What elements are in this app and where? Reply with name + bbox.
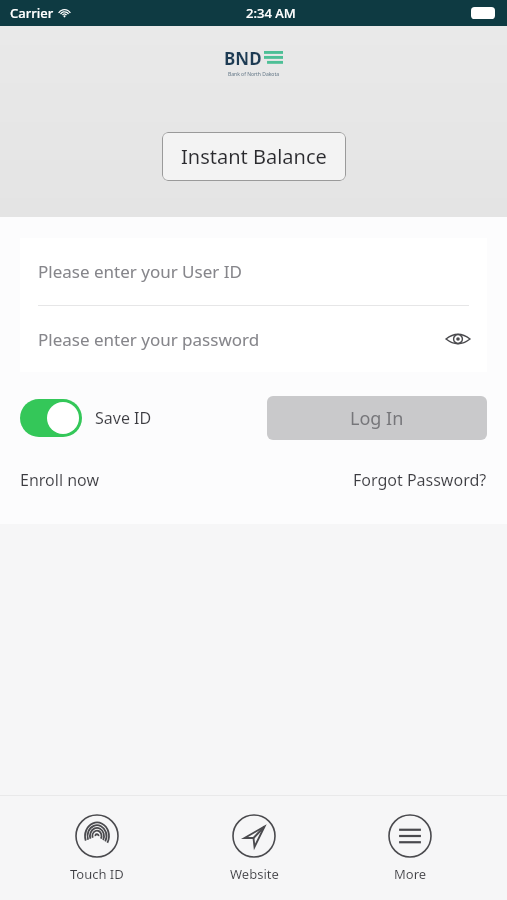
button[interactable]: Please enter your User ID bbox=[20, 238, 487, 305]
staticText: Save ID bbox=[95, 407, 152, 429]
staticText: Carrier bbox=[10, 4, 54, 22]
staticText: Instant Balance bbox=[181, 143, 327, 170]
button[interactable]: Log In bbox=[267, 396, 487, 440]
button[interactable]: Touch ID bbox=[37, 808, 157, 889]
button[interactable]: Enroll now bbox=[20, 465, 99, 495]
button[interactable]: More bbox=[350, 808, 470, 889]
button[interactable]: Show password bbox=[443, 324, 473, 354]
button[interactable]: Forgot Password? bbox=[353, 465, 487, 495]
staticText: More bbox=[394, 865, 427, 883]
staticText: Bank of North Dakota bbox=[228, 71, 280, 78]
staticText: Please enter your User ID bbox=[38, 260, 242, 283]
button[interactable]: Please enter your password bbox=[20, 306, 487, 372]
staticText: Website bbox=[230, 865, 279, 883]
staticText: 2:34 AM bbox=[246, 4, 296, 22]
button[interactable]: Save ID bbox=[20, 399, 152, 437]
staticText: BND bbox=[224, 47, 262, 70]
staticText: Forgot Password? bbox=[353, 469, 487, 491]
staticText: Please enter your password bbox=[38, 328, 260, 351]
staticText: Log In bbox=[350, 406, 404, 431]
button[interactable]: Website bbox=[194, 808, 314, 889]
button[interactable]: Instant Balance bbox=[162, 132, 346, 181]
staticText: Enroll now bbox=[20, 469, 99, 491]
staticText: Touch ID bbox=[70, 865, 124, 883]
